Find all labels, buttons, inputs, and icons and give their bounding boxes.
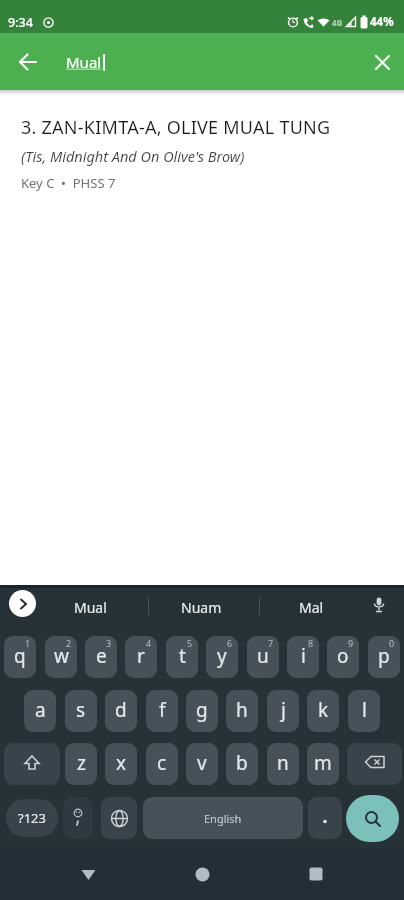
staticText: (Tis, Midnight And On Olive's Brow) [21,146,245,166]
button[interactable]: f [146,690,178,732]
button[interactable]: Nuam [181,598,222,617]
staticText: z [77,750,86,776]
staticText: r [137,643,145,669]
button[interactable]: y [206,636,238,678]
staticText: x [116,750,127,776]
staticText: g [196,697,208,723]
button[interactable] [101,797,137,839]
staticText: 44% [370,14,394,30]
staticText: ?123 [18,809,46,827]
staticText: t [179,643,186,669]
button[interactable] [347,743,402,785]
staticText: c [157,750,167,776]
button[interactable]: a [24,690,56,732]
button[interactable]: Mal [299,598,324,617]
staticText: m [314,750,332,776]
staticText: 9 [348,637,354,649]
staticText: n [277,750,289,776]
button[interactable] [360,34,404,90]
staticText: 7 [268,637,274,649]
staticText: 3 [106,637,112,649]
button[interactable] [308,797,342,839]
button[interactable] [0,34,56,90]
button[interactable]: x [105,743,137,785]
button[interactable]: u [247,636,279,678]
staticText: u [257,643,269,669]
button[interactable]: l [348,690,380,732]
button[interactable]: o [327,636,359,678]
staticText: 2 [66,637,72,649]
button[interactable]: q [4,636,36,678]
button[interactable]: d [105,690,137,732]
staticText: Key C • PHSS 7 [21,174,116,192]
staticText: q [14,643,26,669]
staticText: 4G [332,17,343,28]
staticText: w [54,643,69,669]
button[interactable]: i [287,636,319,678]
button[interactable] [63,797,93,839]
staticText: y [217,643,227,669]
button[interactable] [4,743,60,785]
button[interactable] [9,590,36,617]
button[interactable]: Mual [66,52,360,72]
staticText: o [337,643,349,669]
button[interactable] [367,593,391,617]
staticText: 8 [308,637,314,649]
button[interactable]: p [368,636,400,678]
button[interactable] [70,856,106,892]
staticText: 1 [25,637,31,649]
staticText: j [281,697,286,723]
button[interactable]: h [226,690,258,732]
staticText: d [115,697,127,723]
button[interactable] [184,856,220,892]
button[interactable]: v [186,743,218,785]
staticText: p [378,643,390,669]
staticText: English [204,811,242,826]
button[interactable]: c [146,743,178,785]
staticText: Mual [66,52,102,72]
staticText: v [197,750,207,776]
button[interactable]: m [307,743,339,785]
staticText: 6 [227,637,233,649]
staticText: b [236,750,248,776]
button[interactable] [346,795,399,842]
button[interactable]: e [85,636,117,678]
button[interactable]: w [45,636,77,678]
button[interactable] [298,856,334,892]
staticText: a [35,697,46,723]
button[interactable]: k [307,690,339,732]
staticText: 3. ZAN-KIMTA-A, OLIVE MUAL TUNG [21,115,331,140]
staticText: 5 [187,637,193,649]
staticText: l [362,697,367,723]
button[interactable]: Mual [74,598,107,617]
staticText: k [318,697,329,723]
button[interactable]: s [65,690,97,732]
button[interactable]: t [166,636,198,678]
button[interactable]: 3. ZAN-KIMTA-A, OLIVE MUAL TUNG [0,90,404,192]
staticText: 0 [389,637,395,649]
staticText: e [96,643,107,669]
staticText: s [76,697,86,723]
button[interactable]: n [267,743,299,785]
button[interactable]: r [125,636,157,678]
button[interactable]: ?123 [6,799,58,837]
staticText: i [301,643,306,669]
button[interactable]: g [186,690,218,732]
button[interactable]: English [143,797,303,839]
button[interactable]: j [267,690,299,732]
staticText: 4 [146,637,152,649]
button[interactable]: b [226,743,258,785]
button[interactable]: z [65,743,97,785]
staticText: 9:34 [8,14,33,31]
staticText: f [159,697,166,723]
staticText: h [236,697,248,723]
